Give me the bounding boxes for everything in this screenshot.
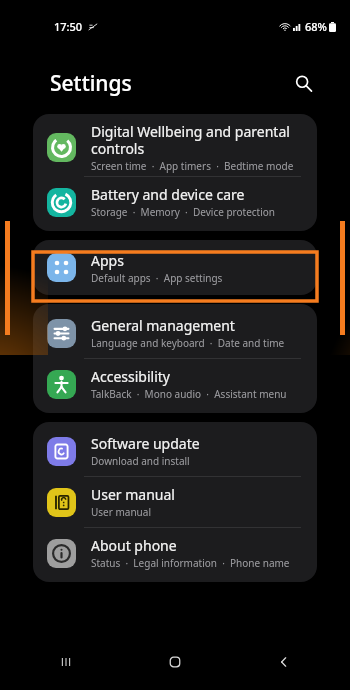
staticText: Software update xyxy=(91,434,200,453)
staticText: Download and install xyxy=(91,454,190,468)
button[interactable]: Accessibility xyxy=(33,359,317,409)
staticText: General management xyxy=(91,316,235,335)
staticText: Storage · Memory · Device protection xyxy=(91,205,276,219)
staticText: Accessibility xyxy=(91,367,170,386)
staticText: User manual xyxy=(91,505,151,519)
staticText: Apps xyxy=(91,251,124,270)
button[interactable]: User manual xyxy=(33,477,317,527)
button[interactable]: Battery and device care xyxy=(33,177,317,227)
staticText: Default apps · App settings xyxy=(91,271,223,285)
button[interactable]: Digital Wellbeing and parental controls xyxy=(33,118,317,176)
button[interactable]: Recents xyxy=(44,640,88,684)
staticText: About phone xyxy=(91,536,177,555)
staticText: TalkBack · Mono audio · Assistant menu xyxy=(91,387,287,401)
button[interactable]: Software update xyxy=(33,426,317,476)
button[interactable]: Back xyxy=(262,640,306,684)
staticText: Screen time · App timers · Bedtime mode xyxy=(91,159,294,173)
staticText: Status · Legal information · Phone name xyxy=(91,556,290,570)
staticText: User manual xyxy=(91,485,175,504)
button[interactable]: Search xyxy=(289,69,317,97)
staticText: Language and keyboard · Date and time xyxy=(91,336,285,350)
staticText: Battery and device care xyxy=(91,185,245,204)
staticText: Digital Wellbeing and parental controls xyxy=(91,122,290,158)
staticText: 68% xyxy=(305,19,327,34)
button[interactable]: Apps xyxy=(33,244,317,291)
button[interactable]: Home xyxy=(153,640,197,684)
button[interactable]: General management xyxy=(33,308,317,358)
staticText: Settings xyxy=(50,69,132,98)
button[interactable]: About phone xyxy=(33,528,317,578)
staticText: 17:50 xyxy=(54,19,83,34)
